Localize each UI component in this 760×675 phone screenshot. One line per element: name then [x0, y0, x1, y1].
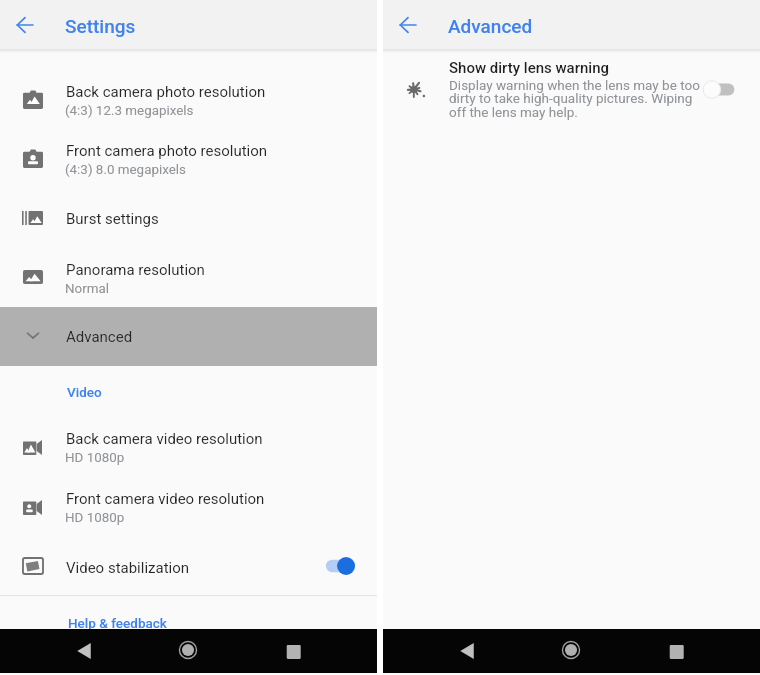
- button[interactable]: Home: [557, 636, 585, 664]
- button[interactable]: Front camera video resolution: [0, 480, 377, 538]
- staticText: Help & feedback: [68, 615, 167, 631]
- staticText: Video: [67, 384, 102, 400]
- button[interactable]: Recent apps: [280, 637, 308, 665]
- button[interactable]: Back camera video resolution: [0, 420, 377, 478]
- button[interactable]: Advanced: [0, 307, 377, 366]
- staticText: (4:3) 8.0 megapixels: [65, 162, 186, 178]
- staticText: Display warning when the lens may be too…: [449, 77, 705, 121]
- staticText: Back camera photo resolution: [66, 83, 266, 101]
- staticText: Front camera photo resolution: [66, 142, 268, 160]
- staticText: Show dirty lens warning: [449, 59, 610, 77]
- button[interactable]: Back: [13, 13, 37, 37]
- staticText: Panorama resolution: [66, 261, 205, 279]
- staticText: HD 1080p: [65, 510, 125, 526]
- staticText: Video stabilization: [66, 559, 190, 577]
- button[interactable]: Show dirty lens warning: [383, 55, 760, 135]
- staticText: Settings: [65, 15, 136, 37]
- button[interactable]: Back: [453, 637, 481, 665]
- staticText: Front camera video resolution: [66, 490, 265, 508]
- staticText: Burst settings: [66, 210, 159, 228]
- button[interactable]: Back camera photo resolution: [0, 73, 377, 131]
- staticText: Back camera video resolution: [66, 430, 263, 448]
- staticText: Advanced: [66, 328, 133, 346]
- button[interactable]: Video stabilization: [0, 538, 377, 594]
- button[interactable]: Video: [0, 366, 377, 416]
- button[interactable]: Home: [174, 636, 202, 664]
- button[interactable]: Help & feedback: [0, 596, 377, 629]
- button[interactable]: Back: [70, 637, 98, 665]
- staticText: (4:3) 12.3 megapixels: [65, 103, 194, 119]
- staticText: HD 1080p: [65, 450, 125, 466]
- button[interactable]: Recent apps: [663, 637, 691, 665]
- button[interactable]: Front camera photo resolution: [0, 132, 377, 190]
- button[interactable]: Back: [396, 13, 420, 37]
- button[interactable]: Burst settings: [0, 191, 377, 249]
- button[interactable]: Panorama resolution: [0, 251, 377, 309]
- staticText: Advanced: [448, 15, 533, 37]
- staticText: Normal: [65, 281, 110, 297]
